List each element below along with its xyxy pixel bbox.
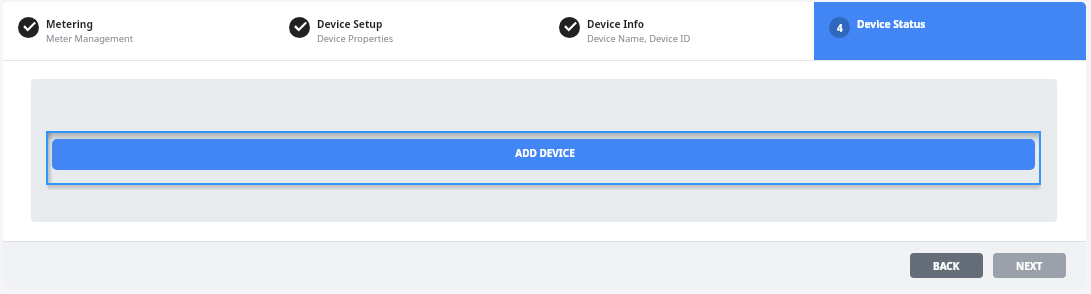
staticText: ADD DEVICE — [515, 146, 575, 160]
button[interactable]: Metering — [3, 2, 274, 60]
staticText: Device Properties — [317, 32, 394, 45]
button[interactable]: BACK — [910, 253, 983, 278]
button[interactable]: 4 — [814, 2, 1086, 60]
staticText: Device Info — [587, 17, 645, 31]
staticText: Device Status — [857, 17, 926, 31]
button[interactable]: NEXT — [993, 253, 1066, 278]
staticText: Device Setup — [317, 17, 383, 31]
staticText: 4 — [837, 21, 843, 35]
staticText: NEXT — [1016, 259, 1043, 273]
staticText: BACK — [933, 259, 960, 273]
staticText: Device Name, Device ID — [587, 32, 691, 45]
staticText: Meter Management — [46, 32, 134, 45]
staticText: Metering — [46, 17, 93, 31]
button[interactable]: ADD DEVICE — [52, 139, 1035, 170]
button[interactable]: Device Setup — [274, 2, 544, 60]
button[interactable]: Device Info — [544, 2, 814, 60]
